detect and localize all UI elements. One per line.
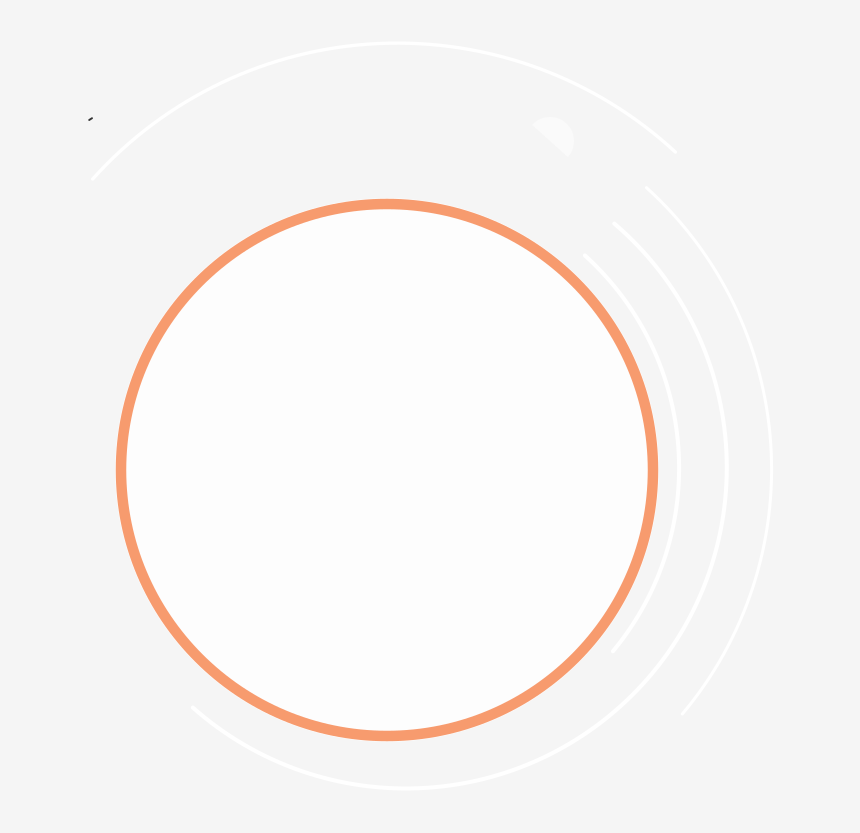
button[interactable]: Progress ring xyxy=(0,0,860,833)
